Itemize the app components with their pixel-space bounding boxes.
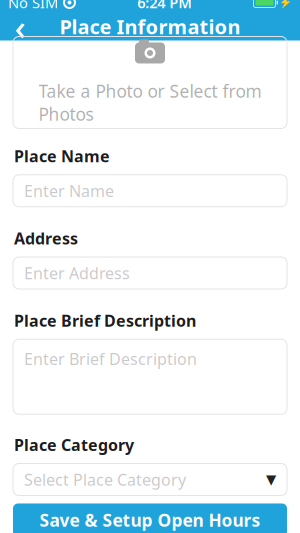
staticText: No SIM <box>8 0 58 12</box>
staticText: Place Brief Description <box>14 310 196 331</box>
button[interactable]: Take a Photo or Select from Photos <box>0 36 300 128</box>
staticText: Enter Name <box>24 180 114 201</box>
button[interactable]: Back <box>0 12 40 40</box>
button[interactable]: Save & Setup Open Hours <box>0 503 300 533</box>
staticText: ▼ <box>266 472 276 487</box>
staticText: ⚡ <box>279 0 292 9</box>
button[interactable]: Select Place Category <box>0 463 300 495</box>
staticText: Enter Brief Description <box>24 348 197 369</box>
staticText: Address <box>14 228 78 249</box>
staticText: 6:24 PM <box>137 0 192 12</box>
staticText: Place Category <box>14 434 134 455</box>
staticText: Place Information <box>59 13 240 40</box>
staticText: Place Name <box>14 145 110 167</box>
staticText: Select Place Category <box>24 469 186 490</box>
button[interactable]: Enter Brief Description <box>0 339 300 414</box>
staticText: Take a Photo or Select from Photos <box>38 79 261 125</box>
staticText: Enter Address <box>24 262 130 284</box>
button[interactable]: Enter Address <box>0 257 300 289</box>
button[interactable]: Enter Name <box>0 175 300 207</box>
staticText: ‹ <box>14 3 25 49</box>
staticText: Save & Setup Open Hours <box>39 508 260 531</box>
